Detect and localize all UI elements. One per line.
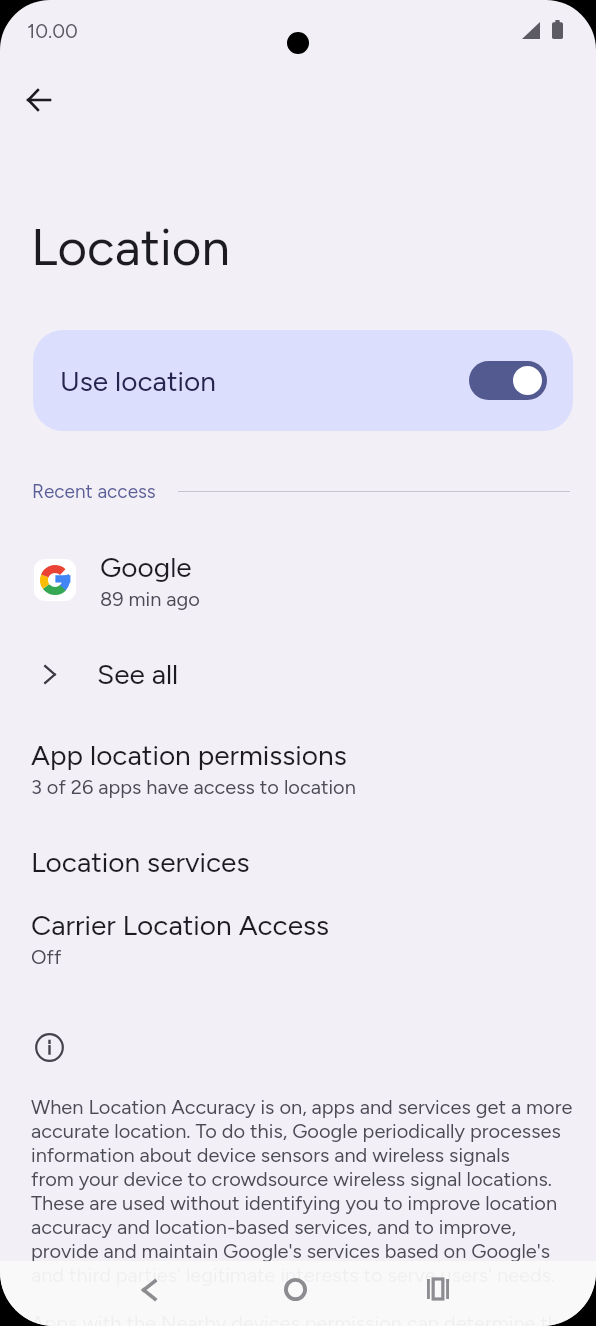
button[interactable]: Home xyxy=(260,1257,330,1322)
staticText: 89 min ago xyxy=(100,587,200,611)
staticText: See all xyxy=(97,657,179,691)
staticText: Carrier Location Access xyxy=(31,908,330,942)
button[interactable]: Recent apps xyxy=(403,1256,473,1321)
staticText: Recent access xyxy=(32,480,156,503)
staticText: Use location xyxy=(60,364,216,398)
staticText: 10.00 xyxy=(27,19,78,43)
staticText: App location permissions xyxy=(31,738,347,772)
button[interactable]: App location permissions xyxy=(0,734,596,805)
staticText: When Location Accuracy is on, apps and s… xyxy=(31,1095,591,1326)
button[interactable]: See all xyxy=(0,648,596,700)
staticText: 3 of 26 apps have access to location xyxy=(31,775,356,799)
staticText: Location services xyxy=(31,845,250,879)
staticText: Off xyxy=(31,945,62,969)
staticText: Google xyxy=(100,550,192,584)
button[interactable]: Navigate up xyxy=(7,68,70,131)
staticText: Location xyxy=(31,217,230,278)
button[interactable]: Use location xyxy=(33,330,573,431)
button[interactable]: Location services xyxy=(0,841,596,885)
button[interactable]: Google xyxy=(0,545,596,615)
button[interactable]: Back xyxy=(114,1257,184,1322)
button[interactable]: Carrier Location Access xyxy=(0,904,596,975)
